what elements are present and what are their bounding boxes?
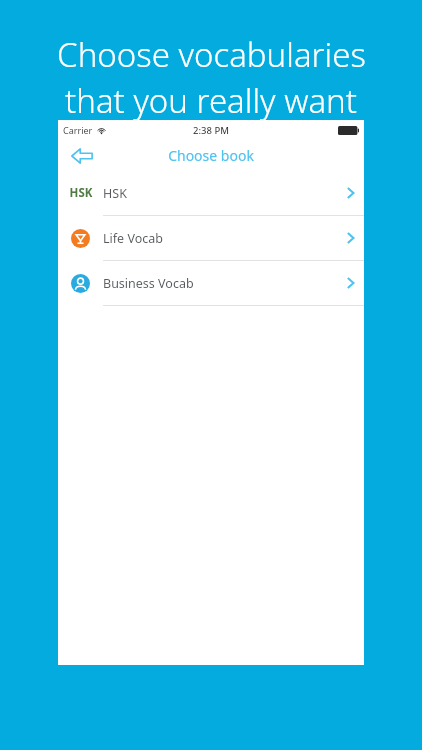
staticText: that you really want	[65, 78, 357, 123]
staticText: 2:38 PM	[193, 124, 229, 137]
staticText: HSK	[103, 185, 336, 202]
staticText: Life Vocab	[103, 230, 336, 247]
staticText: Carrier	[63, 124, 93, 136]
staticText: Choose vocabularies	[57, 32, 366, 77]
staticText: Business Vocab	[103, 275, 336, 292]
button[interactable]: Life Vocab	[58, 216, 364, 260]
button[interactable]: Business Vocab	[58, 261, 364, 305]
staticText: Choose book	[168, 146, 254, 165]
button[interactable]: HSK	[58, 171, 364, 215]
button[interactable]: Back	[65, 142, 99, 170]
staticText: HSK	[66, 185, 96, 201]
